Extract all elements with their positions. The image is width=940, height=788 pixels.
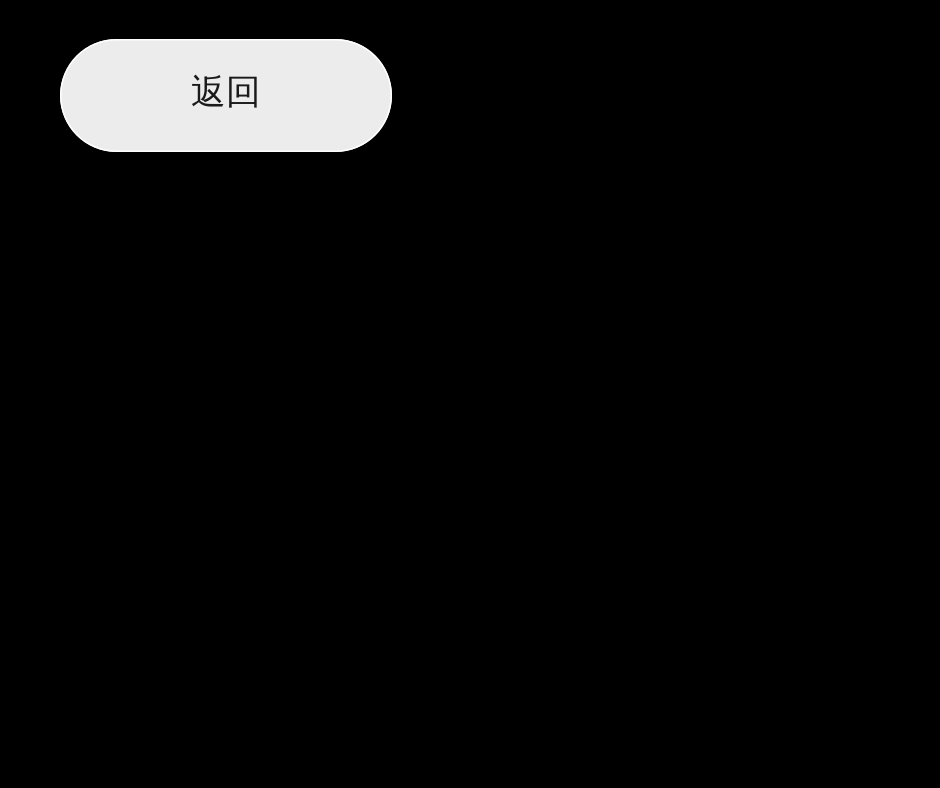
staticText: 返回 [191, 71, 261, 113]
button[interactable]: 返回 [60, 39, 392, 152]
